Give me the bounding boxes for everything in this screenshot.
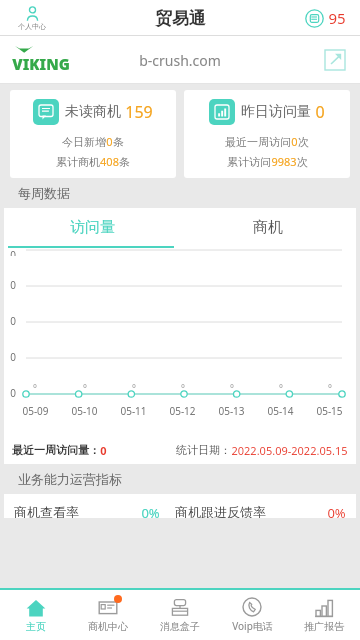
staticText: 05-11 xyxy=(120,404,147,418)
staticText: 0% xyxy=(141,504,160,518)
staticText: 0 xyxy=(10,278,16,292)
staticText: 408 xyxy=(100,154,119,169)
button[interactable]: Open external link xyxy=(324,49,346,71)
staticText: 0 xyxy=(106,134,113,149)
button[interactable]: Coins xyxy=(303,6,348,30)
staticText: 0 xyxy=(132,382,136,390)
staticText: 主页 xyxy=(26,620,46,633)
staticText: 累计商机 xyxy=(56,155,100,169)
staticText: 0 xyxy=(315,101,325,123)
staticText: 访问量 xyxy=(70,218,115,237)
staticText: 0 xyxy=(181,382,185,390)
staticText: 最近一周访问量： xyxy=(12,443,100,457)
button[interactable]: 主页 xyxy=(0,590,72,640)
staticText: 统计日期： xyxy=(176,443,231,457)
button[interactable]: Voip电话 xyxy=(216,590,288,640)
button[interactable]: 商机 xyxy=(180,208,356,246)
button[interactable]: 未读商机 xyxy=(10,90,176,178)
staticText: 条 xyxy=(119,155,130,169)
staticText: 次 xyxy=(297,155,308,169)
staticText: 最近一周访问 xyxy=(225,135,291,149)
staticText: 今日新增 xyxy=(62,135,106,149)
button[interactable]: 消息盒子 xyxy=(144,590,216,640)
staticText: 每周数据 xyxy=(18,185,70,201)
staticText: 0 xyxy=(10,350,16,364)
staticText: 05-13 xyxy=(218,404,245,418)
staticText: 05-10 xyxy=(71,404,98,418)
staticText: 0 xyxy=(10,248,16,256)
staticText: 商机 xyxy=(253,218,283,237)
staticText: 05-12 xyxy=(169,404,196,418)
staticText: b-crush.com xyxy=(139,51,221,70)
staticText: 次 xyxy=(298,135,309,149)
button[interactable]: 访问量 xyxy=(4,208,180,246)
staticText: 贸易通 xyxy=(155,8,206,29)
staticText: 0 xyxy=(328,382,332,390)
staticText: 2022.05.09-2022.05.15 xyxy=(231,443,348,458)
button[interactable]: 昨日访问量 xyxy=(184,90,350,178)
staticText: 商机跟进反馈率 xyxy=(175,504,266,518)
staticText: 0 xyxy=(10,386,16,400)
other: Coins xyxy=(305,9,324,28)
staticText: 商机中心 xyxy=(88,620,128,633)
staticText: 业务能力运营指标 xyxy=(18,471,122,487)
staticText: 95 xyxy=(328,8,346,28)
staticText: Voip电话 xyxy=(232,619,273,633)
staticText: 9983 xyxy=(271,154,297,169)
staticText: 商机查看率 xyxy=(14,504,79,518)
staticText: 05-15 xyxy=(316,404,343,418)
staticText: 0 xyxy=(100,443,107,458)
staticText: 条 xyxy=(113,135,124,149)
staticText: 推广报告 xyxy=(304,620,344,633)
button[interactable]: 商机中心 xyxy=(72,590,144,640)
staticText: 05-14 xyxy=(267,404,294,418)
staticText: 消息盒子 xyxy=(160,620,200,633)
staticText: 0 xyxy=(83,382,87,390)
staticText: 0 xyxy=(33,382,37,390)
staticText: 0 xyxy=(10,314,16,328)
button[interactable]: 推广报告 xyxy=(288,590,360,640)
staticText: 0 xyxy=(291,134,298,149)
staticText: 05-09 xyxy=(22,404,49,418)
staticText: VIKING xyxy=(12,54,70,74)
staticText: 159 xyxy=(125,101,153,123)
staticText: 0% xyxy=(327,504,346,518)
staticText: 昨日访问量 xyxy=(241,103,311,121)
staticText: 0 xyxy=(279,382,283,390)
staticText: 0 xyxy=(230,382,234,390)
staticText: 未读商机 xyxy=(65,103,121,121)
staticText: 个人中心 xyxy=(18,22,46,31)
staticText: 累计访问 xyxy=(227,155,271,169)
button[interactable]: 个人中心 xyxy=(14,4,50,33)
